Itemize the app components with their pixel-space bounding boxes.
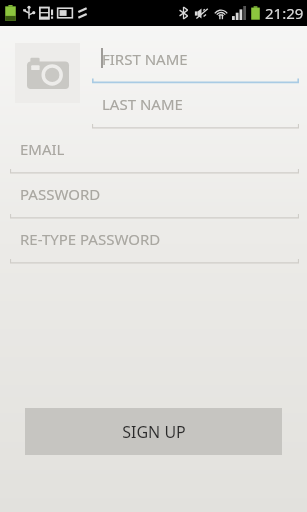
- staticText: PASSWORD: [20, 184, 101, 204]
- button[interactable]: PASSWORD: [10, 178, 299, 219]
- button[interactable]: FIRST NAME: [92, 43, 299, 84]
- button[interactable]: SIGN UP: [25, 408, 282, 455]
- staticText: RE-TYPE PASSWORD: [20, 229, 161, 249]
- staticText: EMAIL: [20, 139, 65, 159]
- button[interactable]: EMAIL: [10, 133, 299, 174]
- button[interactable]: RE-TYPE PASSWORD: [10, 223, 299, 264]
- button[interactable]: Add profile photo: [15, 43, 80, 103]
- staticText: 21:29: [265, 3, 304, 23]
- staticText: SIGN UP: [122, 421, 186, 443]
- staticText: LAST NAME: [102, 94, 183, 114]
- button[interactable]: LAST NAME: [92, 88, 299, 129]
- staticText: FIRST NAME: [102, 49, 188, 69]
